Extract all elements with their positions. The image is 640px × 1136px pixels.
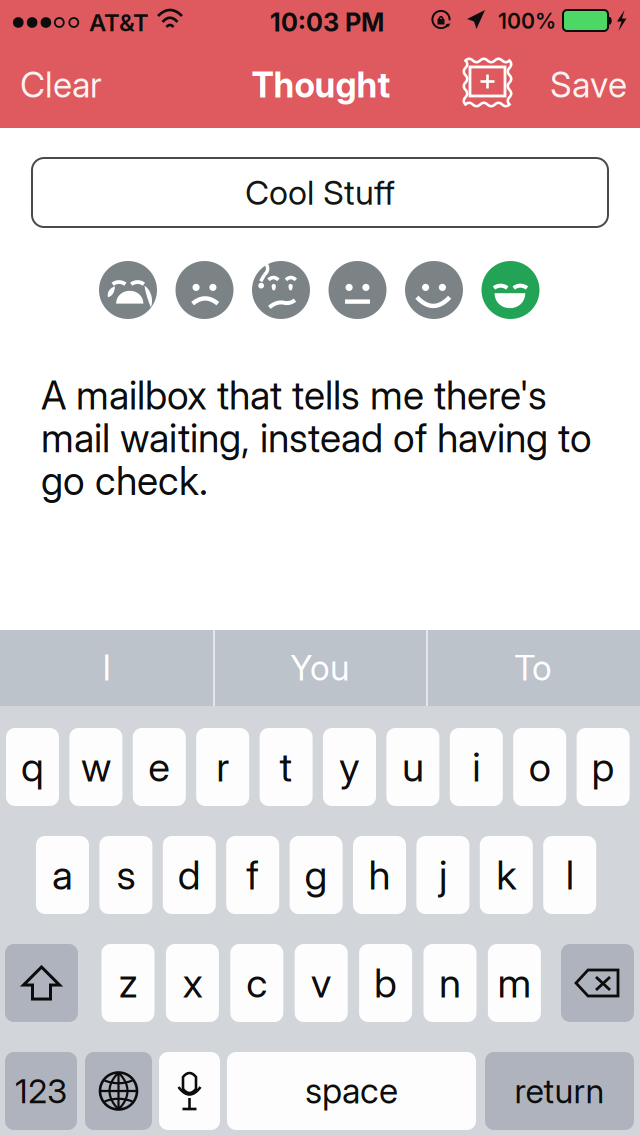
button[interactable]: Cool Stuff (32, 158, 608, 227)
staticText: l (566, 851, 574, 899)
button[interactable]: l (543, 836, 596, 914)
button[interactable]: x (166, 944, 219, 1022)
button[interactable]: You (213, 630, 426, 706)
staticText: p (592, 743, 615, 791)
staticText: i (472, 743, 480, 791)
staticText: Clear (20, 64, 102, 106)
staticText: u (402, 743, 424, 791)
staticText: w (81, 743, 111, 791)
staticText: AT&T (89, 8, 149, 37)
button[interactable]: k (480, 836, 533, 914)
button[interactable]: Confused (252, 261, 310, 319)
button[interactable]: Shift (5, 944, 78, 1022)
button[interactable]: y (323, 728, 376, 806)
staticText: r (216, 743, 229, 791)
button[interactable]: d (163, 836, 216, 914)
button[interactable]: c (230, 944, 283, 1022)
staticText: To (514, 647, 552, 689)
button[interactable]: f (226, 836, 279, 914)
staticText: e (148, 743, 170, 791)
button[interactable]: return (485, 1052, 634, 1130)
button[interactable]: a (36, 836, 89, 914)
button[interactable]: p (577, 728, 630, 806)
button[interactable]: j (416, 836, 469, 914)
button[interactable]: i (450, 728, 503, 806)
staticText: h (368, 851, 390, 899)
staticText: q (21, 743, 44, 791)
button[interactable]: Happy (405, 261, 463, 319)
button[interactable]: Delete (561, 944, 634, 1022)
button[interactable]: To (426, 630, 640, 706)
staticText: Save (550, 64, 627, 106)
button[interactable]: n (423, 944, 476, 1022)
button[interactable]: I (0, 630, 213, 706)
button[interactable]: m (488, 944, 541, 1022)
staticText: You (290, 647, 349, 689)
staticText: z (118, 959, 137, 1007)
staticText: I (102, 647, 110, 689)
staticText: A mailbox that tells me there's mail wai… (41, 372, 592, 504)
button[interactable]: Clear (0, 50, 140, 120)
button[interactable]: Dictate (159, 1052, 220, 1130)
staticText: o (529, 743, 551, 791)
button[interactable]: Next keyboard (85, 1052, 152, 1130)
staticText: f (246, 851, 259, 899)
button[interactable]: s (99, 836, 152, 914)
staticText: x (182, 959, 202, 1007)
button[interactable]: Save (536, 50, 640, 120)
staticText: Thought (251, 64, 390, 106)
button[interactable]: z (101, 944, 154, 1022)
staticText: 100% (498, 8, 556, 34)
staticText: m (497, 959, 531, 1007)
staticText: space (305, 1070, 398, 1112)
button[interactable]: q (6, 728, 59, 806)
button[interactable]: u (386, 728, 439, 806)
button[interactable]: v (295, 944, 348, 1022)
staticText: return (514, 1071, 604, 1111)
staticText: 123 (15, 1071, 67, 1111)
staticText: k (496, 851, 516, 899)
staticText: c (246, 959, 267, 1007)
button[interactable]: b (359, 944, 412, 1022)
staticText: t (280, 743, 293, 791)
staticText: v (311, 959, 332, 1007)
staticText: j (439, 851, 447, 899)
button[interactable]: w (69, 728, 122, 806)
staticText: g (305, 851, 328, 899)
staticText: n (439, 959, 461, 1007)
button[interactable]: h (353, 836, 406, 914)
button[interactable]: o (513, 728, 566, 806)
button[interactable]: r (196, 728, 249, 806)
button[interactable]: e (133, 728, 186, 806)
staticText: b (374, 959, 397, 1007)
button[interactable]: Very happy (481, 261, 539, 319)
button[interactable]: t (260, 728, 313, 806)
button[interactable]: Crying (99, 261, 157, 319)
button[interactable]: space (227, 1052, 476, 1130)
button[interactable]: 123 (5, 1052, 77, 1130)
button[interactable]: Neutral (328, 261, 386, 319)
button[interactable]: Sad (175, 261, 233, 319)
staticText: s (116, 851, 135, 899)
staticText: d (178, 851, 201, 899)
staticText: Cool Stuff (245, 172, 395, 213)
staticText: 10:03 PM (270, 7, 384, 38)
staticText: a (52, 851, 73, 899)
button[interactable]: Add photo (462, 57, 513, 108)
staticText: y (339, 743, 360, 791)
button[interactable]: g (290, 836, 343, 914)
